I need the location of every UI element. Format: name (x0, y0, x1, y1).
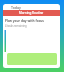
staticText: Morning Routine (19, 11, 44, 15)
staticText: Today (11, 5, 21, 10)
button[interactable] (7, 53, 57, 65)
button[interactable]: Today (3, 4, 60, 10)
staticText: Plan your day with focus (5, 19, 44, 23)
button[interactable]: Morning Routine (3, 10, 60, 16)
staticText: 4 tasks remaining (5, 24, 27, 28)
